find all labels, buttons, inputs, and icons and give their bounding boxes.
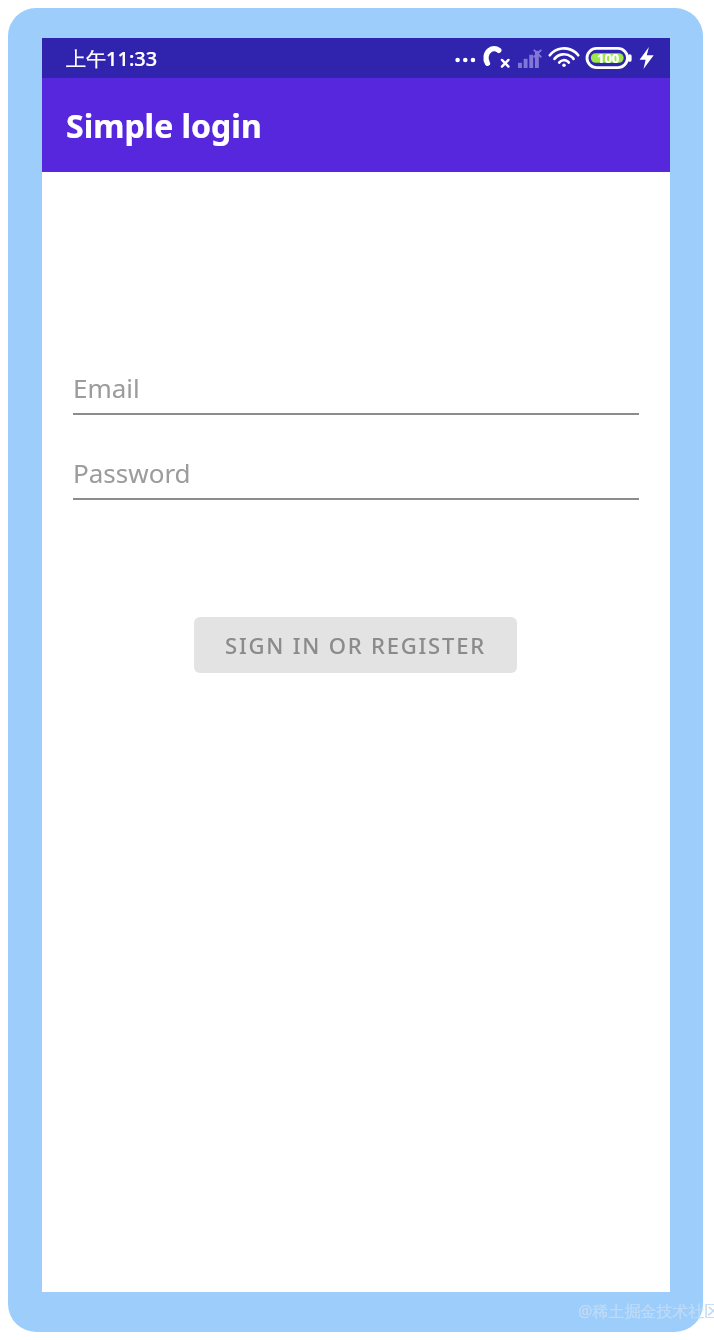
staticText: @稀土掘金技术社区 [578, 1300, 714, 1322]
staticText: Email [73, 370, 140, 405]
button[interactable]: Password [73, 455, 639, 500]
button[interactable]: Email [73, 370, 639, 415]
staticText: Simple login [66, 104, 262, 148]
staticText: SIGN IN OR REGISTER [225, 630, 486, 660]
staticText: 100 [597, 49, 620, 67]
staticText: Password [73, 455, 191, 490]
button[interactable]: SIGN IN OR REGISTER [194, 617, 517, 673]
staticText: 上午11:33 [66, 45, 158, 72]
